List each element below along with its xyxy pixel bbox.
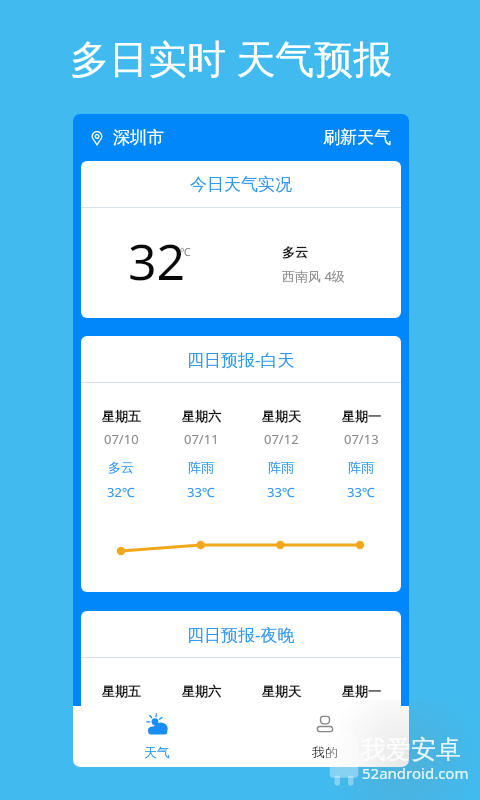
staticText: 阵雨 [268, 459, 294, 475]
staticText: 多日实时 天气预报 [70, 31, 393, 84]
staticText: 我的 [312, 744, 338, 760]
staticText: 西南风 4级 [282, 267, 345, 285]
other: Location [89, 130, 105, 146]
staticText: 我爱安卓 [361, 734, 461, 765]
staticText: 四日预报-白天 [187, 348, 295, 371]
staticText: 星期六 [182, 408, 221, 424]
staticText: 07/11 [184, 430, 219, 448]
staticText: 四日预报-夜晚 [187, 623, 295, 646]
staticText: 07/13 [344, 430, 379, 448]
staticText: 星期五 [102, 408, 141, 424]
staticText: 星期一 [342, 408, 381, 424]
staticText: ℃ [180, 244, 191, 259]
staticText: 阵雨 [348, 459, 374, 475]
staticText: 星期天 [262, 408, 301, 424]
staticText: 刷新天气 [323, 127, 391, 148]
staticText: 32℃ [107, 483, 135, 501]
staticText: 07/10 [104, 430, 139, 448]
staticText: 星期天 [262, 683, 301, 699]
button[interactable]: 天气 [73, 706, 241, 767]
button[interactable]: 我的 [241, 706, 409, 767]
staticText: 星期六 [182, 683, 221, 699]
staticText: 07/12 [264, 430, 299, 448]
staticText: 今日天气实况 [190, 174, 292, 195]
staticText: 星期五 [102, 683, 141, 699]
staticText: 多云 [108, 459, 134, 475]
button[interactable]: 刷新天气 [319, 127, 395, 148]
staticText: 32 [128, 227, 186, 295]
staticText: 天气 [144, 744, 170, 760]
staticText: 52android.com [362, 763, 469, 783]
staticText: 星期一 [342, 683, 381, 699]
staticText: 33℃ [347, 483, 375, 501]
staticText: 多云 [282, 244, 308, 260]
staticText: 深圳市 [113, 127, 164, 148]
staticText: 33℃ [267, 483, 295, 501]
staticText: 33℃ [187, 483, 215, 501]
staticText: 阵雨 [188, 459, 214, 475]
